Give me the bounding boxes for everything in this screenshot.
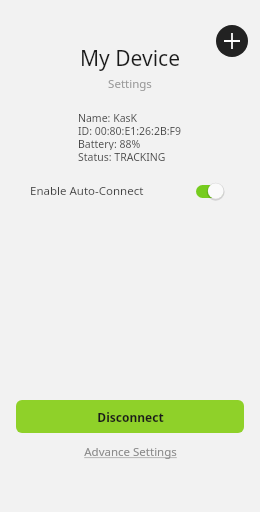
staticText: Advance Settings — [84, 444, 177, 460]
button[interactable]: Disconnect — [16, 400, 244, 433]
staticText: Name: KasK — [78, 111, 138, 124]
button[interactable]: Enable Auto-Connect — [0, 178, 260, 204]
staticText: Disconnect — [97, 409, 164, 425]
staticText: Settings — [108, 76, 152, 92]
staticText: Status: TRACKING — [78, 150, 166, 163]
other: Enable Auto-Connect toggle, on — [196, 183, 224, 199]
staticText: Enable Auto-Connect — [30, 183, 144, 199]
button[interactable]: Advance Settings — [78, 442, 183, 462]
staticText: My Device — [80, 44, 180, 73]
button[interactable]: Add device — [216, 25, 248, 57]
staticText: Battery: 88% — [78, 137, 141, 150]
staticText: ID: 00:80:E1:26:2B:F9 — [78, 124, 182, 137]
